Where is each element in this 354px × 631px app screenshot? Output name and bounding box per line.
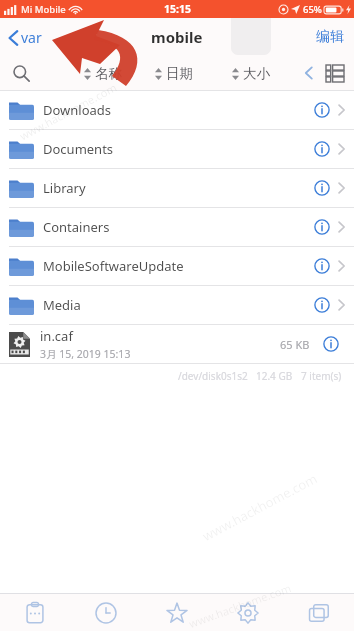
button[interactable]: Clipboard xyxy=(0,594,70,631)
staticText: mobile xyxy=(151,27,203,47)
button[interactable]: Downloads xyxy=(0,91,354,129)
staticText: 15:15 xyxy=(164,2,191,16)
staticText: Documents xyxy=(43,140,114,158)
staticText: /dev/disk0s1s2 xyxy=(178,369,248,383)
button[interactable]: Windows xyxy=(283,594,354,631)
button[interactable]: 编辑 xyxy=(306,22,354,52)
staticText: 名称 xyxy=(95,65,122,82)
button[interactable]: Info xyxy=(309,97,335,123)
staticText: 12.4 GB xyxy=(256,369,293,383)
button[interactable]: Documents xyxy=(0,130,354,168)
button[interactable]: Favorites xyxy=(141,594,212,631)
staticText: www.hackhome.com xyxy=(17,79,119,143)
button[interactable]: Info xyxy=(309,253,335,279)
button[interactable]: Info xyxy=(309,214,335,240)
button[interactable]: Info xyxy=(309,175,335,201)
staticText: Media xyxy=(43,296,81,314)
button[interactable]: List view xyxy=(322,60,348,86)
button[interactable]: 大小 xyxy=(229,60,273,87)
button[interactable]: Containers xyxy=(0,208,354,246)
button[interactable]: Search xyxy=(4,56,38,90)
staticText: Containers xyxy=(43,218,110,236)
button[interactable]: Collapse xyxy=(300,60,318,86)
staticText: Library xyxy=(43,179,86,197)
staticText: var xyxy=(21,28,42,47)
staticText: 大小 xyxy=(243,65,270,82)
button[interactable]: Info xyxy=(309,136,335,162)
staticText: 65 KB xyxy=(280,337,310,352)
staticText: 7 item(s) xyxy=(301,369,342,383)
button[interactable]: MobileSoftwareUpdate xyxy=(0,247,354,285)
button[interactable]: Recents xyxy=(70,594,141,631)
staticText: 编辑 xyxy=(316,28,344,46)
button[interactable]: Info xyxy=(309,292,335,318)
staticText: Mi Mobile xyxy=(21,3,66,16)
staticText: 日期 xyxy=(166,65,193,82)
staticText: www.hackhome.com xyxy=(187,580,293,631)
button[interactable]: 日期 xyxy=(152,60,196,87)
staticText: Downloads xyxy=(43,101,112,119)
button[interactable]: Settings xyxy=(212,594,283,631)
button[interactable]: var xyxy=(0,23,50,52)
button[interactable]: 名称 xyxy=(81,60,125,87)
button[interactable]: in.caf xyxy=(0,325,354,363)
staticText: MobileSoftwareUpdate xyxy=(43,257,184,275)
button[interactable]: Media xyxy=(0,286,354,324)
staticText: 65% xyxy=(303,3,322,16)
staticText: in.caf xyxy=(40,327,73,345)
button[interactable]: Library xyxy=(0,169,354,207)
button[interactable]: Info xyxy=(318,331,344,357)
staticText: 3月 15, 2019 15:13 xyxy=(40,347,131,361)
